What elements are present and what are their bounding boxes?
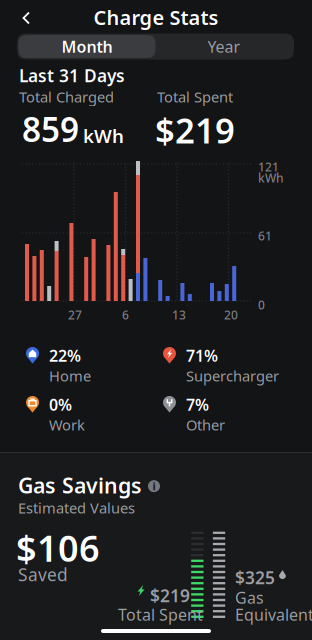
staticText: $325 [235,566,275,589]
staticText: Saved [18,563,68,586]
staticText: 71% [186,345,218,366]
staticText: Gas [235,587,264,608]
staticText: Total Charged [19,87,114,106]
button[interactable]: About gas savings [148,478,160,492]
staticText: kWh [83,123,124,148]
staticText: Total Spent [157,87,233,106]
button[interactable]: Back [12,5,42,31]
staticText: Total Spent [118,604,203,625]
staticText: 0% [49,394,72,415]
staticText: 61 [258,228,272,244]
staticText: 6 [122,307,129,323]
staticText: 0 [258,297,265,313]
staticText: 121 [258,159,279,175]
staticText: Charge Stats [93,4,218,31]
staticText: $106 [16,524,100,572]
staticText: Equivalent [235,604,312,625]
button[interactable]: Month [18,35,155,58]
staticText: 859 [22,107,79,151]
staticText: $219 [155,107,235,153]
staticText: Estimated Values [18,498,135,517]
staticText: 7% [186,394,209,415]
staticText: Home [49,366,91,385]
staticText: Work [49,415,85,434]
staticText: 20 [224,307,238,323]
button[interactable]: Year [155,35,292,58]
staticText: 22% [49,345,81,366]
staticText: $219 [150,584,190,607]
staticText: Month [61,36,112,57]
staticText: Other [186,415,225,434]
staticText: i [152,479,155,493]
staticText: Year [207,36,240,57]
staticText: Gas Savings [18,471,142,499]
staticText: 27 [68,307,82,323]
staticText: Supercharger [186,366,279,385]
staticText: Last 31 Days [19,64,125,87]
staticText: kWh [258,170,284,186]
staticText: 13 [172,307,186,323]
